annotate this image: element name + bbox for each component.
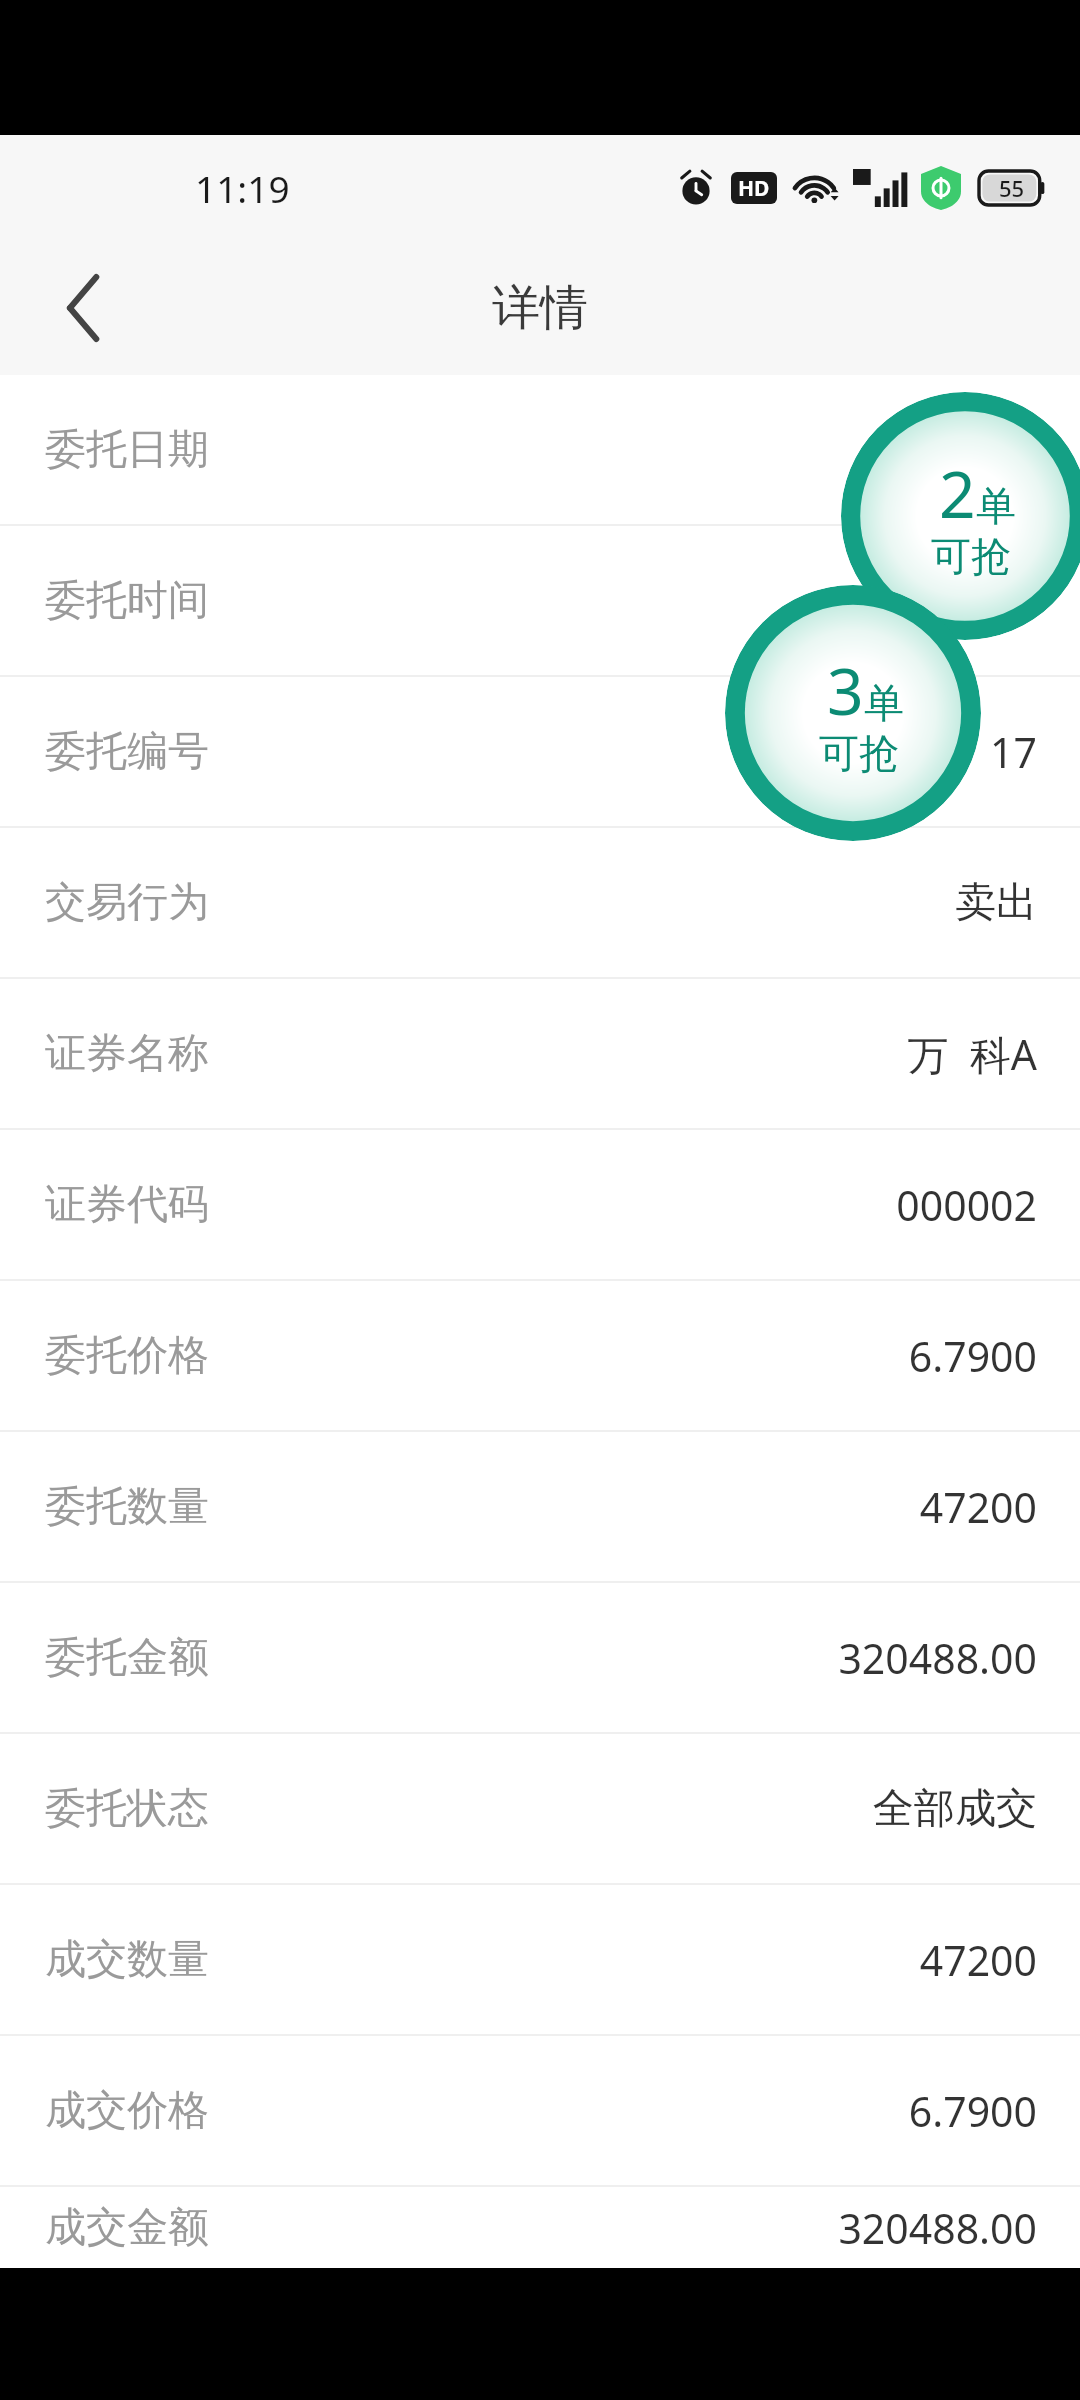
staticText: HD: [738, 174, 770, 203]
staticText: 2: [939, 450, 976, 537]
staticText: 17: [990, 724, 1037, 780]
staticText: 卖出: [955, 877, 1037, 929]
staticText: 万 科A: [907, 1026, 1037, 1082]
staticText: 320488.00: [838, 2200, 1037, 2256]
staticText: 委托时间: [45, 575, 209, 627]
button[interactable]: 成交金额: [0, 2187, 1080, 2268]
staticText: 委托日期: [45, 424, 209, 476]
staticText: 2025: [943, 422, 1037, 478]
staticText: 47200: [919, 1479, 1037, 1535]
button[interactable]: 委托状态: [0, 1734, 1080, 1883]
button[interactable]: 委托价格: [0, 1281, 1080, 1430]
staticText: 3: [827, 647, 864, 734]
staticText: 11:19: [195, 163, 290, 213]
button[interactable]: 委托金额: [0, 1583, 1080, 1732]
staticText: 6.7900: [908, 2083, 1037, 2139]
staticText: 委托编号: [45, 726, 209, 778]
staticText: 可抢: [931, 531, 1011, 581]
staticText: 成交金额: [45, 2202, 209, 2254]
staticText: 6.7900: [908, 1328, 1037, 1384]
button[interactable]: 成交数量: [0, 1885, 1080, 2034]
button[interactable]: 证券名称: [0, 979, 1080, 1128]
button[interactable]: 委托编号: [0, 677, 1080, 826]
staticText: 55: [999, 173, 1025, 203]
staticText: 单: [976, 481, 1016, 531]
staticText: 详情: [492, 278, 588, 338]
staticText: 委托状态: [45, 1783, 209, 1835]
staticText: 证券代码: [45, 1179, 209, 1231]
button[interactable]: 证券代码: [0, 1130, 1080, 1279]
button[interactable]: Back: [30, 254, 138, 362]
staticText: 交易行为: [45, 877, 209, 929]
staticText: 委托数量: [45, 1481, 209, 1533]
button[interactable]: 3单可抢: [725, 585, 981, 841]
staticText: 委托金额: [45, 1632, 209, 1684]
staticText: 成交价格: [45, 2085, 209, 2137]
button[interactable]: 委托时间: [0, 526, 1080, 675]
staticText: 委托价格: [45, 1330, 209, 1382]
staticText: 000002: [896, 1177, 1037, 1233]
staticText: 47200: [919, 1932, 1037, 1988]
button[interactable]: 2单可抢: [841, 392, 1080, 640]
button[interactable]: 交易行为: [0, 828, 1080, 977]
staticText: 证券名称: [45, 1028, 209, 1080]
staticText: 全部成交: [873, 1783, 1037, 1835]
button[interactable]: 成交价格: [0, 2036, 1080, 2185]
button[interactable]: 委托数量: [0, 1432, 1080, 1581]
staticText: 成交数量: [45, 1934, 209, 1986]
staticText: 单: [864, 678, 904, 728]
button[interactable]: 委托日期: [0, 375, 1080, 524]
staticText: 可抢: [819, 728, 899, 778]
staticText: 320488.00: [838, 1630, 1037, 1686]
